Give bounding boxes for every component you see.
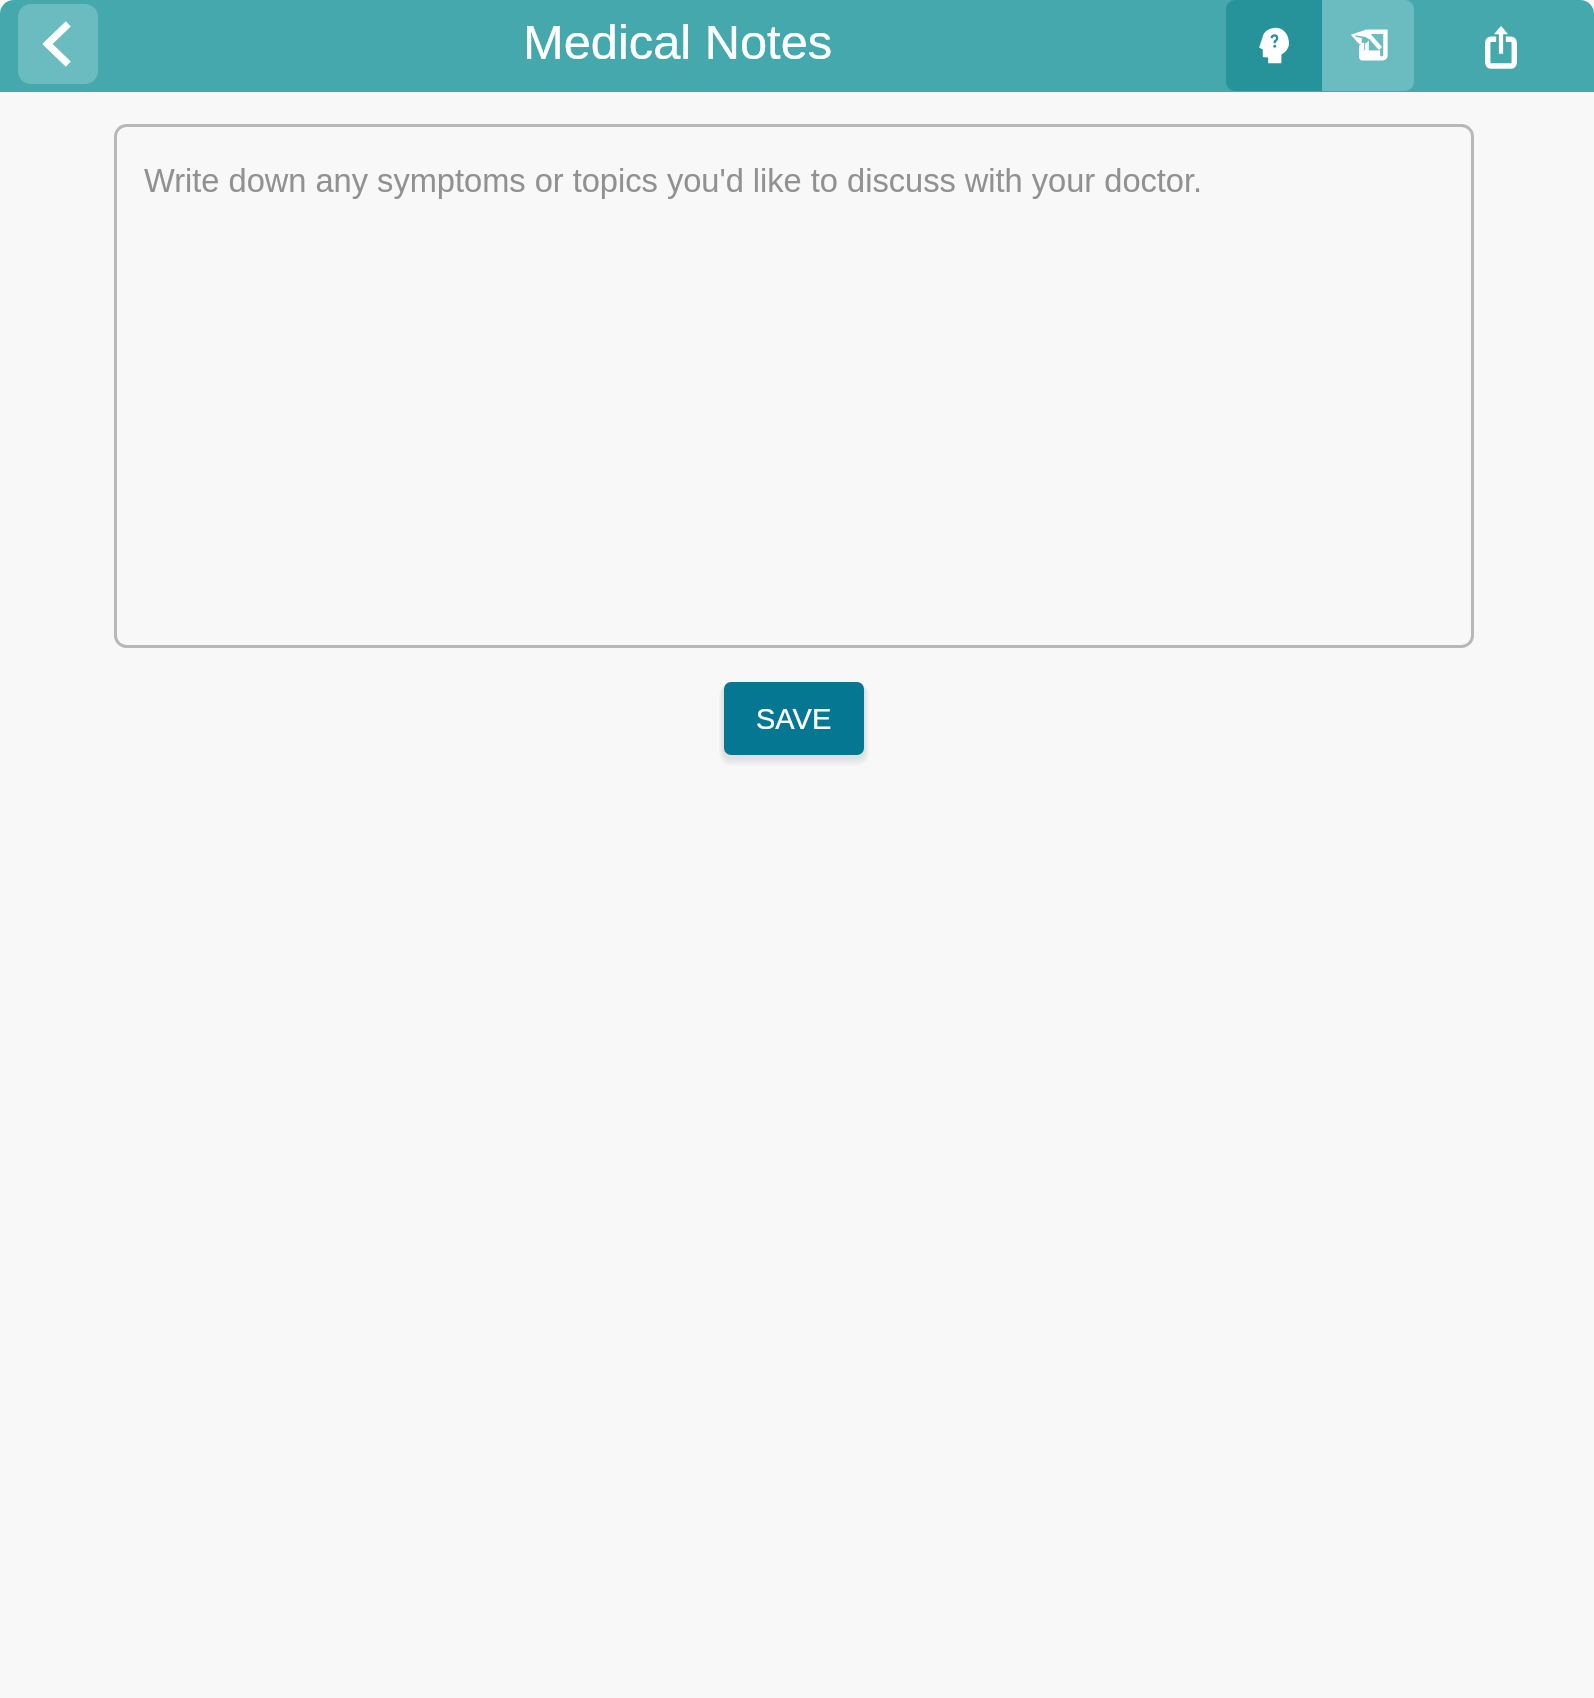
staticText: Medical Notes	[523, 15, 833, 70]
button[interactable]: Back	[18, 4, 98, 84]
staticText: Write down any symptoms or topics you'd …	[144, 162, 1203, 198]
button[interactable]: Share	[1455, 0, 1547, 92]
staticText: SAVE	[756, 703, 832, 735]
button[interactable]: Edit note	[1322, 0, 1414, 91]
button[interactable]: Write down any symptoms or topics you'd …	[114, 124, 1474, 648]
button[interactable]: SAVE	[724, 682, 864, 755]
button[interactable]: Help	[1226, 0, 1322, 91]
